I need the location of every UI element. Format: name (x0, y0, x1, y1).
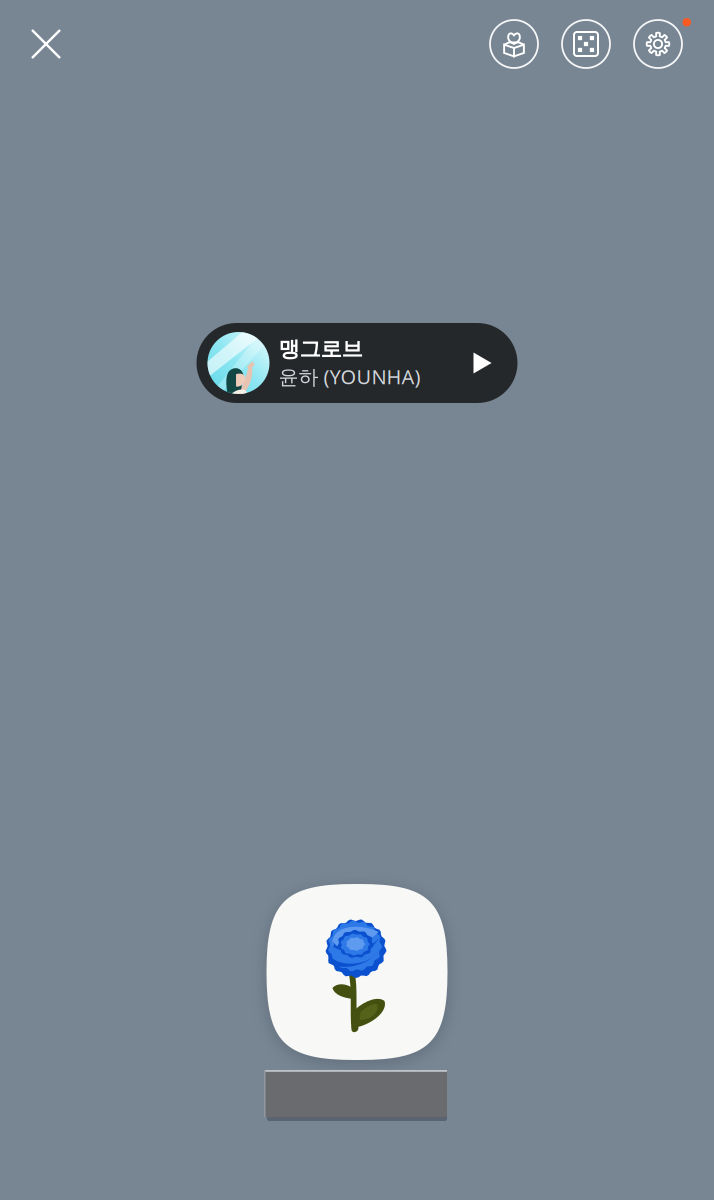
staticText: 맹그로브 (278, 336, 362, 362)
staticText: 윤하 (YOUNHA) (278, 363, 420, 390)
button[interactable]: Settings (634, 20, 682, 68)
button[interactable]: Items (490, 20, 538, 68)
button[interactable]: Scan code (562, 20, 610, 68)
button[interactable]: 맹그로브 (196, 323, 517, 403)
button[interactable]: Close (24, 22, 68, 66)
